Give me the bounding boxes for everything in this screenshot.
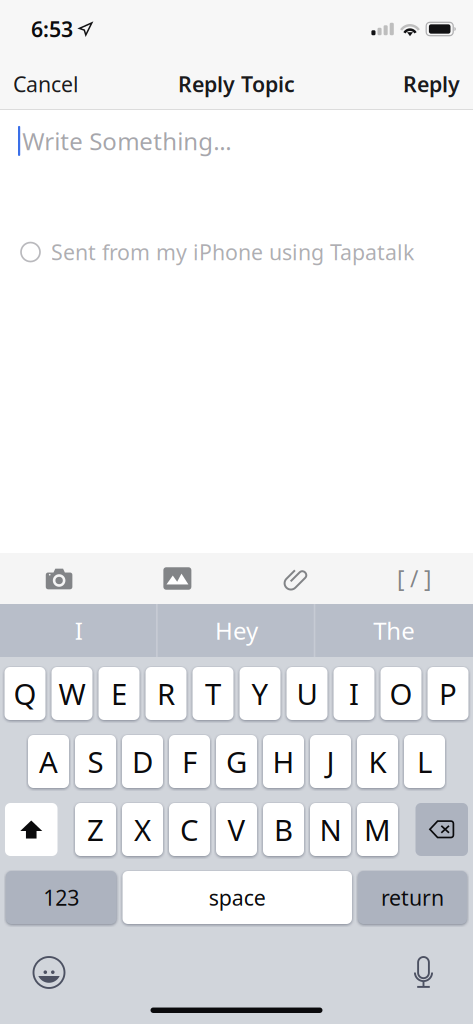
button[interactable]: M: [357, 803, 398, 856]
staticText: space: [209, 883, 266, 912]
staticText: U: [296, 674, 317, 713]
staticText: return: [381, 883, 444, 912]
staticText: E: [111, 674, 127, 713]
staticText: I: [75, 615, 83, 646]
staticText: I: [349, 674, 359, 713]
button[interactable]: A: [28, 735, 69, 788]
staticText: G: [226, 742, 247, 781]
button[interactable]: H: [263, 735, 304, 788]
button[interactable]: Photo library: [118, 567, 236, 590]
staticText: A: [39, 742, 58, 781]
button[interactable]: I: [333, 667, 374, 720]
button[interactable]: T: [192, 667, 233, 720]
staticText: 6:53: [31, 15, 73, 43]
staticText: [ / ]: [397, 563, 431, 593]
button[interactable]: Reply: [387, 58, 473, 110]
button[interactable]: D: [122, 735, 163, 788]
staticText: B: [274, 810, 293, 849]
button[interactable]: O: [380, 667, 421, 720]
staticText: L: [417, 742, 432, 781]
button[interactable]: R: [145, 667, 186, 720]
button[interactable]: X: [122, 803, 163, 856]
staticText: Sent from my iPhone using Tapatalk: [51, 238, 414, 266]
staticText: N: [319, 810, 341, 849]
button[interactable]: Z: [75, 803, 116, 856]
staticText: V: [227, 810, 245, 849]
button[interactable]: Hey: [158, 604, 315, 657]
button[interactable]: S: [75, 735, 116, 788]
staticText: O: [389, 674, 412, 713]
staticText: Reply Topic: [178, 70, 295, 98]
staticText: Z: [87, 810, 104, 849]
staticText: 123: [43, 883, 79, 912]
staticText: S: [87, 742, 103, 781]
button[interactable]: E: [98, 667, 139, 720]
staticText: Hey: [215, 615, 258, 646]
button[interactable]: space: [122, 871, 352, 924]
staticText: Cancel: [13, 70, 79, 98]
staticText: D: [132, 742, 153, 781]
button[interactable]: Delete: [415, 803, 468, 856]
button[interactable]: 123: [6, 871, 116, 924]
staticText: K: [368, 742, 386, 781]
staticText: The: [373, 615, 415, 646]
button[interactable]: U: [286, 667, 327, 720]
staticText: M: [364, 810, 391, 849]
button[interactable]: F: [169, 735, 210, 788]
button[interactable]: Insert code: [355, 563, 473, 593]
staticText: H: [272, 742, 294, 781]
button[interactable]: G: [216, 735, 257, 788]
button[interactable]: Camera: [0, 567, 118, 589]
button[interactable]: W: [51, 667, 92, 720]
button[interactable]: Y: [239, 667, 280, 720]
staticText: Q: [13, 674, 36, 713]
staticText: X: [134, 810, 151, 849]
staticText: Reply: [403, 70, 460, 98]
staticText: W: [58, 674, 85, 713]
button[interactable]: B: [263, 803, 304, 856]
button[interactable]: J: [310, 735, 351, 788]
staticText: Write Something...: [22, 125, 231, 157]
button[interactable]: I: [0, 604, 158, 657]
button[interactable]: Emoji keyboard: [33, 957, 64, 988]
button[interactable]: Q: [4, 667, 45, 720]
staticText: R: [157, 674, 175, 713]
staticText: T: [205, 674, 221, 713]
staticText: J: [326, 742, 334, 781]
button[interactable]: C: [169, 803, 210, 856]
button[interactable]: Attach file: [236, 566, 355, 591]
staticText: Y: [251, 674, 268, 713]
button[interactable]: Cancel: [0, 58, 95, 110]
staticText: F: [182, 742, 197, 781]
button[interactable]: L: [404, 735, 445, 788]
button[interactable]: Dictation: [414, 957, 433, 988]
button[interactable]: The: [315, 604, 473, 657]
button[interactable]: N: [310, 803, 351, 856]
staticText: P: [439, 674, 457, 713]
button[interactable]: return: [358, 871, 467, 924]
button[interactable]: P: [427, 667, 468, 720]
button[interactable]: K: [357, 735, 398, 788]
button[interactable]: V: [216, 803, 257, 856]
button[interactable]: Shift: [5, 803, 57, 856]
staticText: C: [180, 810, 199, 849]
